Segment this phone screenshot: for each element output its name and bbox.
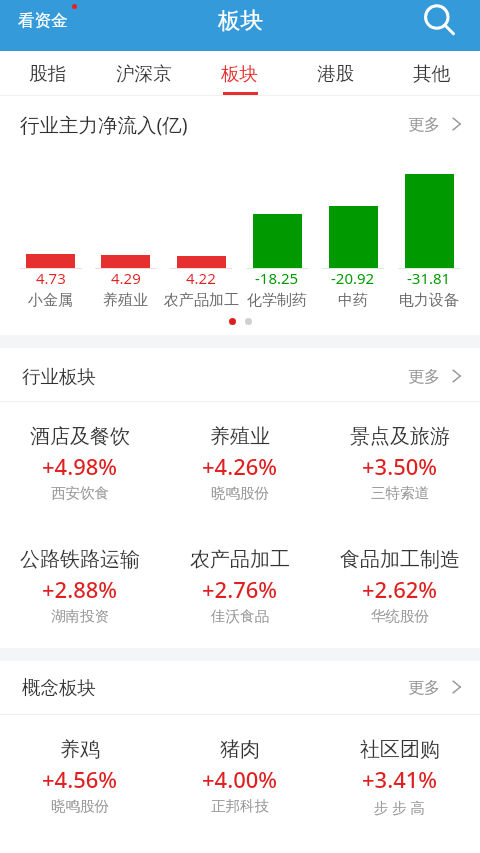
button[interactable]: 板块: [192, 51, 288, 96]
staticText: +2.88%: [42, 574, 118, 604]
button[interactable]: 行业板块: [0, 348, 480, 401]
button[interactable]: 养鸡: [0, 715, 160, 838]
staticText: 步 步 高: [374, 797, 426, 817]
staticText: 公路铁路运输: [20, 547, 140, 572]
button[interactable]: 行业主力净流入(亿): [0, 96, 480, 149]
button[interactable]: 公路铁路运输: [0, 525, 160, 648]
button[interactable]: Search: [432, 0, 474, 42]
button[interactable]: 概念板块: [0, 661, 480, 714]
staticText: 沪深京: [116, 62, 172, 85]
staticText: 西安饮食: [51, 484, 109, 502]
staticText: 养殖业: [210, 424, 270, 449]
button[interactable]: 酒店及餐饮: [0, 402, 160, 525]
button[interactable]: 农产品加工: [160, 525, 320, 648]
button[interactable]: 景点及旅游: [320, 402, 480, 525]
staticText: 港股: [317, 62, 355, 85]
staticText: +4.00%: [202, 764, 278, 794]
staticText: 养鸡: [60, 737, 100, 762]
button[interactable]: 社区团购: [320, 715, 480, 838]
staticText: 农产品加工: [190, 547, 290, 572]
staticText: 4.22: [186, 268, 216, 288]
button[interactable]: 看资金: [18, 10, 68, 31]
staticText: 概念板块: [22, 676, 96, 699]
staticText: 板块: [221, 62, 259, 85]
staticText: 养殖业: [103, 291, 148, 310]
staticText: +4.26%: [202, 451, 278, 481]
staticText: +2.62%: [362, 574, 438, 604]
staticText: +3.41%: [362, 764, 438, 794]
staticText: +4.56%: [42, 764, 118, 794]
staticText: 行业主力净流入(亿): [20, 111, 188, 138]
staticText: 农产品加工: [164, 291, 239, 310]
staticText: 板块: [218, 6, 263, 34]
button[interactable]: 猪肉: [160, 715, 320, 838]
staticText: 其他: [413, 62, 451, 85]
staticText: 4.29: [111, 268, 141, 288]
staticText: 景点及旅游: [350, 424, 450, 449]
button[interactable]: 食品加工制造: [320, 525, 480, 648]
staticText: 更多: [408, 367, 440, 387]
staticText: 湖南投资: [51, 607, 109, 625]
staticText: 社区团购: [360, 737, 440, 762]
button[interactable]: 其他: [384, 51, 480, 96]
staticText: 食品加工制造: [340, 547, 460, 572]
staticText: +4.98%: [42, 451, 118, 481]
staticText: 看资金: [18, 10, 68, 31]
staticText: 股指: [29, 62, 67, 85]
staticText: 小金属: [28, 291, 73, 310]
staticText: 三特索道: [371, 484, 429, 502]
button[interactable]: 股指: [0, 51, 96, 96]
staticText: 更多: [408, 678, 440, 698]
staticText: 晓鸣股份: [211, 484, 269, 502]
staticText: 更多: [408, 115, 440, 135]
button[interactable]: 沪深京: [96, 51, 192, 96]
button[interactable]: 养殖业: [160, 402, 320, 525]
staticText: 晓鸣股份: [51, 797, 109, 815]
staticText: -31.81: [407, 268, 451, 288]
staticText: 电力设备: [399, 291, 459, 310]
staticText: 佳沃食品: [211, 607, 269, 625]
staticText: 行业板块: [22, 365, 96, 388]
staticText: +2.76%: [202, 574, 278, 604]
staticText: 华统股份: [371, 607, 429, 625]
staticText: 猪肉: [220, 737, 260, 762]
staticText: 中药: [338, 291, 368, 310]
staticText: 酒店及餐饮: [30, 424, 130, 449]
staticText: -20.92: [331, 268, 375, 288]
staticText: 正邦科技: [211, 797, 269, 815]
staticText: -18.25: [255, 268, 299, 288]
button[interactable]: 港股: [288, 51, 384, 96]
staticText: 化学制药: [247, 291, 307, 310]
staticText: 4.73: [36, 268, 66, 288]
staticText: +3.50%: [362, 451, 438, 481]
